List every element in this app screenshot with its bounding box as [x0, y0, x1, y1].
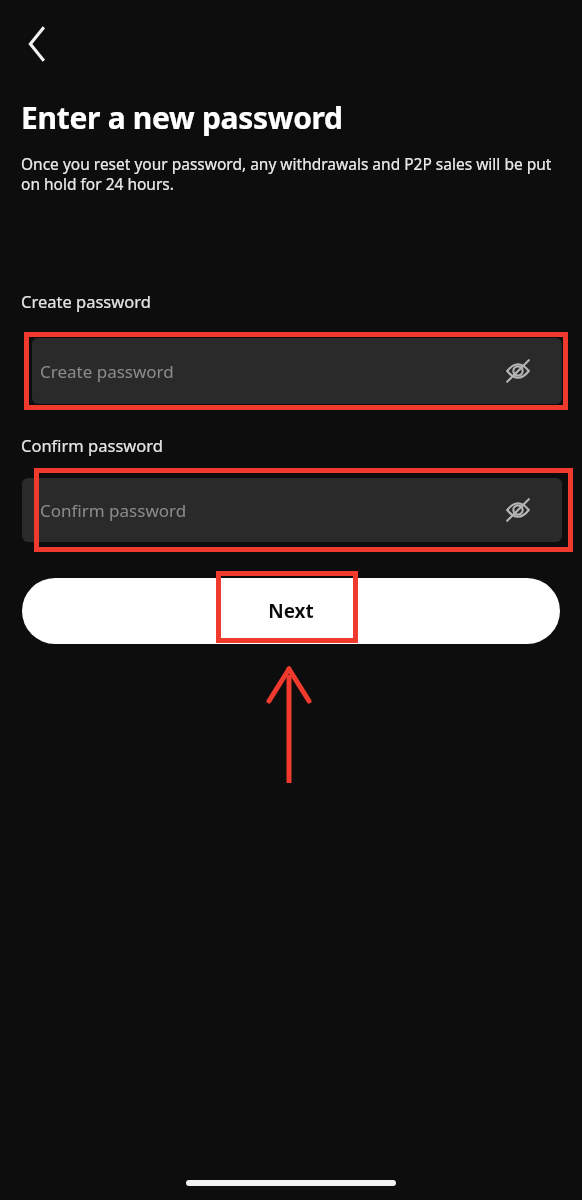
staticText: Next: [268, 598, 314, 624]
button[interactable]: Next: [22, 578, 560, 644]
staticText: Enter a new password: [21, 97, 343, 138]
staticText: Confirm password: [40, 499, 187, 522]
staticText: Create password: [40, 360, 174, 383]
button[interactable]: Show password: [500, 353, 536, 389]
button[interactable]: Show confirm password: [500, 492, 536, 528]
staticText: Create password: [21, 290, 151, 312]
button[interactable]: Confirm password: [22, 478, 562, 542]
staticText: Once you reset your password, any withdr…: [21, 153, 566, 195]
staticText: Confirm password: [21, 434, 163, 456]
button[interactable]: Create password: [32, 338, 562, 404]
button[interactable]: Back: [14, 21, 60, 67]
